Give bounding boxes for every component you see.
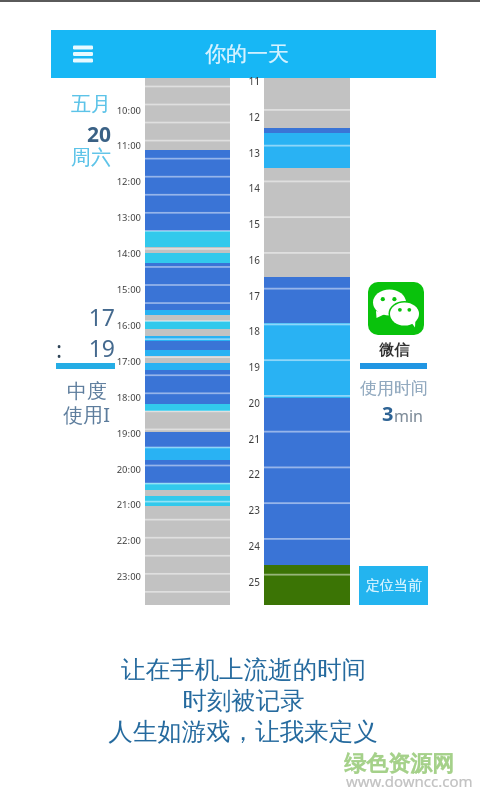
staticText: min	[394, 405, 423, 427]
staticText: 10:00	[101, 104, 141, 117]
staticText: 23:00	[101, 570, 141, 583]
staticText: 18	[230, 324, 260, 338]
staticText: 绿色资源网	[344, 750, 454, 778]
staticText: 3	[382, 400, 394, 427]
staticText: 13	[230, 146, 260, 160]
staticText: 13:00	[101, 211, 141, 224]
button[interactable]: Monthly usage timeline	[264, 78, 350, 605]
staticText: 让在手机上流逝的时间	[121, 654, 366, 685]
staticText: 22	[230, 467, 260, 481]
staticText: 19	[20, 332, 115, 363]
staticText: :	[56, 333, 63, 364]
staticText: 五月	[21, 92, 111, 117]
staticText: 21:00	[101, 498, 141, 511]
staticText: 16:00	[101, 319, 141, 332]
button[interactable]: Daily usage timeline	[145, 78, 230, 605]
staticText: 17	[230, 289, 260, 303]
staticText: www.downcc.com	[346, 771, 473, 791]
staticText: 周六	[21, 145, 111, 170]
staticText: 20	[21, 120, 111, 149]
staticText: 15:00	[101, 283, 141, 296]
staticText: 19	[230, 360, 260, 374]
staticText: 19:00	[101, 427, 141, 440]
staticText: 21	[230, 432, 260, 446]
staticText: 17	[20, 301, 115, 332]
staticText: 14	[230, 181, 260, 195]
button[interactable]: 五月	[20, 88, 115, 170]
staticText: 11	[230, 74, 260, 88]
staticText: 时刻被记录	[182, 685, 305, 716]
staticText: 使用I	[20, 401, 110, 428]
staticText: 25	[230, 575, 260, 589]
staticText: 微信	[354, 341, 434, 360]
button[interactable]: 定位当前	[359, 566, 428, 605]
staticText: 20	[230, 396, 260, 410]
staticText: 使用时间	[354, 378, 434, 399]
staticText: 15	[230, 217, 260, 231]
staticText: 人生如游戏，让我来定义	[108, 716, 378, 747]
button[interactable]: 17	[20, 296, 119, 428]
staticText: 16	[230, 253, 260, 267]
staticText: 22:00	[101, 534, 141, 547]
staticText: 定位当前	[366, 577, 422, 595]
staticText: 你的一天	[205, 41, 289, 67]
staticText: 23	[230, 503, 260, 517]
staticText: 18:00	[101, 391, 141, 404]
staticText: 14:00	[101, 247, 141, 260]
button[interactable]: Menu	[71, 43, 95, 64]
staticText: 12:00	[101, 175, 141, 188]
staticText: 24	[230, 539, 260, 553]
staticText: 17:00	[101, 355, 141, 368]
staticText: 12	[230, 110, 260, 124]
button[interactable]: WeChat	[368, 282, 424, 335]
staticText: 20:00	[101, 463, 141, 476]
staticText: 中度	[17, 379, 107, 404]
staticText: 11:00	[101, 139, 141, 152]
